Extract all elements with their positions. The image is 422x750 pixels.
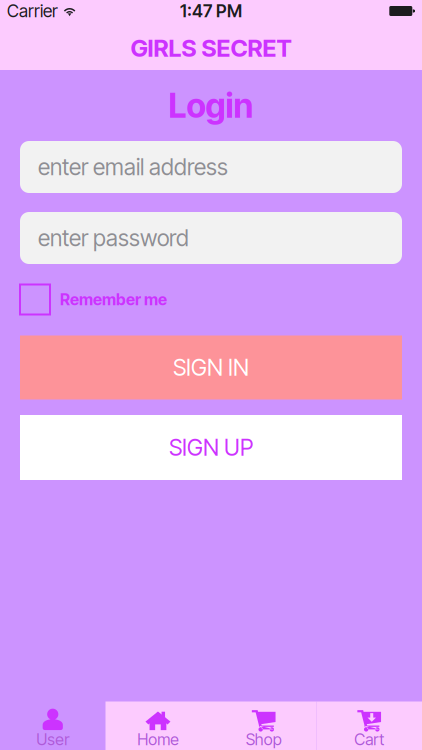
staticText: Shop	[246, 730, 282, 749]
staticText: SIGN IN	[173, 354, 249, 381]
staticText: enter email address	[38, 153, 228, 181]
button[interactable]: SIGN UP	[0, 415, 422, 480]
staticText: Carrier	[7, 0, 58, 21]
button[interactable]: SIGN IN	[0, 335, 422, 399]
staticText: Login	[168, 85, 253, 126]
button[interactable]: Cart	[316, 701, 422, 750]
button[interactable]: User	[0, 701, 105, 750]
staticText: GIRLS SECRET	[130, 33, 291, 62]
staticText: Remember me	[60, 290, 167, 309]
staticText: Home	[137, 730, 179, 749]
button[interactable]: Shop	[211, 701, 316, 750]
staticText: 1:47 PM	[180, 0, 242, 21]
button[interactable]: enter email address	[0, 141, 422, 193]
staticText: enter password	[38, 224, 189, 252]
staticText: SIGN UP	[169, 434, 253, 461]
button[interactable]: Home	[105, 701, 211, 750]
button[interactable]: enter password	[0, 212, 422, 264]
staticText: User	[36, 730, 69, 749]
button[interactable]: Remember me	[0, 284, 422, 314]
staticText: Cart	[354, 730, 384, 749]
